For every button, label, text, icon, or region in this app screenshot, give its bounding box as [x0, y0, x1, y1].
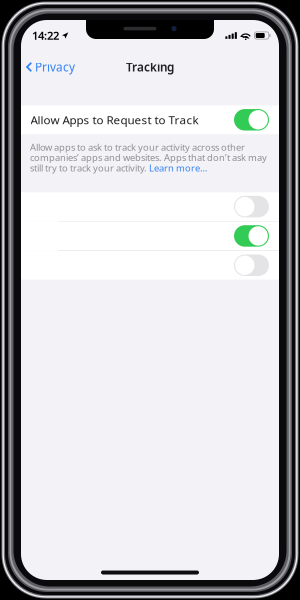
staticText: 14:22 [32, 28, 59, 43]
button[interactable] [21, 192, 279, 221]
staticText: Privacy [35, 59, 75, 75]
button[interactable] [21, 222, 279, 250]
button[interactable]: Allow Apps to Request to Track [21, 105, 279, 134]
staticText: companies’ apps and websites. Apps that … [30, 151, 267, 164]
staticText: still try to track your activity. [30, 162, 149, 174]
staticText: Tracking [126, 59, 174, 75]
button[interactable]: Learn more… [149, 162, 207, 174]
button[interactable] [21, 251, 279, 280]
staticText: Allow Apps to Request to Track [30, 112, 198, 127]
button[interactable]: Privacy [21, 54, 83, 80]
staticText: Allow apps to ask to track your activity… [30, 141, 245, 153]
staticText: Learn more… [149, 162, 207, 174]
